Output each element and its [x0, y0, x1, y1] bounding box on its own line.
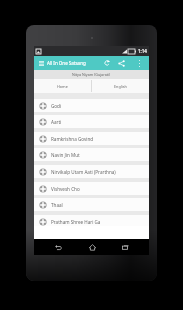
staticText: Pratham Shree Hari Ga [51, 219, 101, 225]
staticText: English [114, 84, 127, 89]
button[interactable]: Home [82, 239, 102, 255]
staticText: Godi [51, 103, 62, 109]
staticText: Thaal [51, 202, 63, 208]
button[interactable]: Godi [34, 99, 149, 112]
staticText: Navin Jin Mut [51, 152, 80, 158]
button[interactable]: Refresh [101, 56, 113, 70]
button[interactable]: Navigation menu [36, 57, 46, 69]
staticText: Aarti [51, 119, 62, 125]
staticText: Nitya Niyam (Gujarati) [72, 72, 111, 77]
button[interactable]: Nirvikalp Utam Aati (Prarthna) [34, 165, 149, 178]
button[interactable]: Thaal [34, 198, 149, 211]
button[interactable]: More options [133, 56, 145, 70]
staticText: Nirvikalp Utam Aati (Prarthna) [51, 169, 116, 175]
button[interactable]: Pratham Shree Hari Ga [34, 215, 149, 226]
staticText: All In One Satsang [47, 60, 86, 66]
staticText: 1:14 [138, 48, 147, 54]
button[interactable]: Ramkrishna Govind [34, 132, 149, 145]
staticText: Ramkrishna Govind [51, 136, 94, 142]
button[interactable]: Home [34, 79, 91, 93]
button[interactable]: Aarti [34, 115, 149, 128]
button[interactable]: Navin Jin Mut [34, 148, 149, 161]
button[interactable]: English [92, 79, 149, 93]
staticText: Vishvesh Cho [51, 186, 80, 192]
staticText: Home [57, 84, 68, 89]
button[interactable]: Back [48, 239, 68, 255]
button[interactable]: Vishvesh Cho [34, 182, 149, 195]
button[interactable]: Share [115, 56, 127, 70]
button[interactable]: Recent apps [115, 239, 135, 255]
